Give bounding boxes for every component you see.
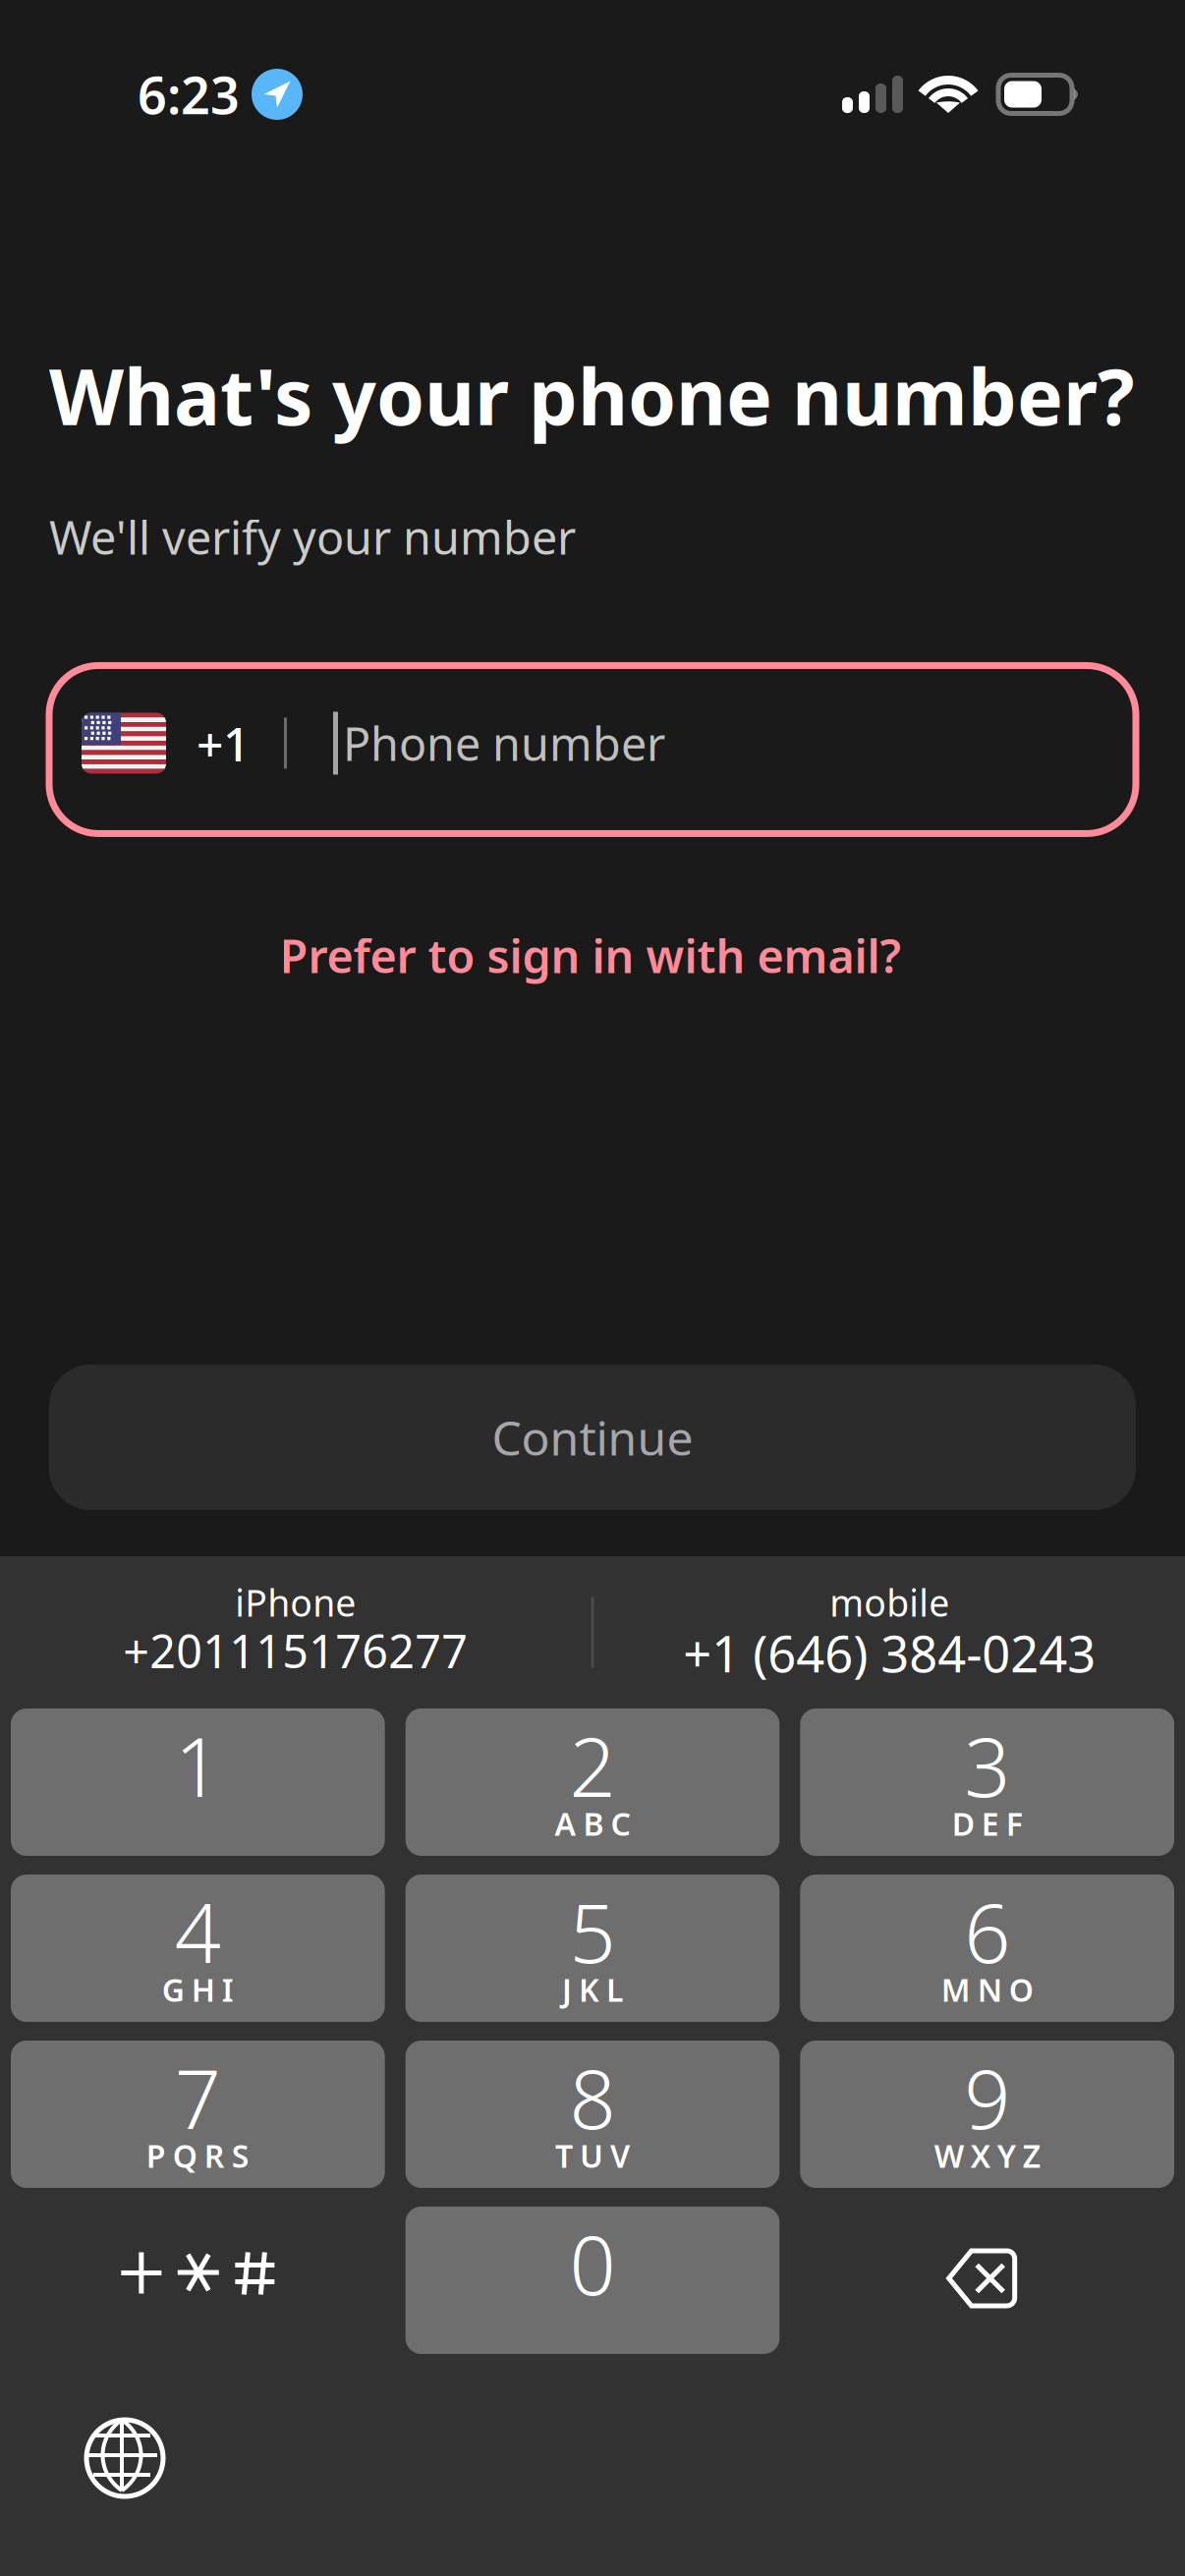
staticText: 5 bbox=[569, 1878, 616, 1985]
staticText: Q bbox=[173, 2135, 197, 2176]
staticText: iPhone bbox=[235, 1578, 356, 1627]
staticText: 6 bbox=[964, 1878, 1010, 1985]
staticText: R bbox=[204, 2135, 225, 2176]
button[interactable]: 9 bbox=[800, 2041, 1174, 2188]
staticText: +201115176277 bbox=[123, 1620, 468, 1681]
button[interactable]: Delete bbox=[800, 2207, 1174, 2354]
staticText: W bbox=[934, 2135, 964, 2176]
staticText: O bbox=[1009, 1969, 1033, 2010]
button[interactable]: 4 bbox=[11, 1875, 385, 2022]
staticText: K bbox=[579, 1969, 599, 2010]
staticText: 1 bbox=[175, 1712, 221, 1819]
staticText: Phone number bbox=[343, 713, 665, 774]
staticText: C bbox=[611, 1803, 630, 1844]
button[interactable]: 2 bbox=[406, 1708, 780, 1856]
staticText: 6:23 bbox=[138, 60, 240, 128]
staticText: We'll verify your number bbox=[49, 506, 576, 567]
button[interactable]: Prefer to sign in with email? bbox=[49, 926, 1132, 985]
staticText: 3 bbox=[964, 1712, 1010, 1819]
staticText: T bbox=[555, 2135, 573, 2176]
staticText: B bbox=[583, 1803, 604, 1844]
button[interactable]: 3 bbox=[800, 1708, 1174, 1856]
staticText: A bbox=[555, 1803, 576, 1844]
staticText: +1 bbox=[197, 712, 250, 774]
staticText: Z bbox=[1023, 2135, 1040, 2176]
staticText: 9 bbox=[964, 2044, 1010, 2151]
button[interactable]: 8 bbox=[406, 2041, 780, 2188]
staticText: 4 bbox=[175, 1878, 221, 1985]
staticText: E bbox=[981, 1803, 999, 1844]
staticText: What's your phone number? bbox=[49, 344, 1135, 447]
staticText: mobile bbox=[830, 1578, 949, 1627]
staticText: 8 bbox=[569, 2044, 616, 2151]
staticText: Y bbox=[997, 2135, 1016, 2176]
staticText: I bbox=[222, 1969, 234, 2010]
staticText: V bbox=[610, 2135, 630, 2176]
staticText: D bbox=[952, 1803, 974, 1844]
staticText: U bbox=[580, 2135, 603, 2176]
staticText: 7 bbox=[175, 2044, 221, 2151]
staticText: N bbox=[977, 1969, 1002, 2010]
button[interactable]: Switch keyboard bbox=[71, 2404, 179, 2512]
button[interactable]: 7 bbox=[11, 2041, 385, 2188]
staticText: P bbox=[146, 2135, 166, 2176]
staticText: L bbox=[606, 1969, 623, 2010]
button[interactable]: 1 bbox=[11, 1708, 385, 1856]
button[interactable]: 5 bbox=[406, 1875, 780, 2022]
staticText: X bbox=[971, 2135, 990, 2176]
staticText: 2 bbox=[569, 1712, 616, 1819]
staticText: J bbox=[562, 1969, 572, 2010]
staticText: Continue bbox=[492, 1406, 693, 1469]
staticText: +1 (646) 384-0243 bbox=[683, 1620, 1096, 1686]
staticText: 0 bbox=[569, 2210, 616, 2318]
staticText: M bbox=[941, 1969, 971, 2010]
button[interactable]: Symbols bbox=[11, 2207, 385, 2354]
staticText: S bbox=[232, 2135, 249, 2176]
button[interactable]: 6 bbox=[800, 1875, 1174, 2022]
staticText: G bbox=[162, 1969, 185, 2010]
staticText: H bbox=[191, 1969, 215, 2010]
button[interactable]: 0 bbox=[406, 2207, 780, 2354]
staticText: F bbox=[1006, 1803, 1023, 1844]
button[interactable]: Continue bbox=[49, 1365, 1136, 1510]
staticText: Prefer to sign in with email? bbox=[280, 925, 902, 986]
